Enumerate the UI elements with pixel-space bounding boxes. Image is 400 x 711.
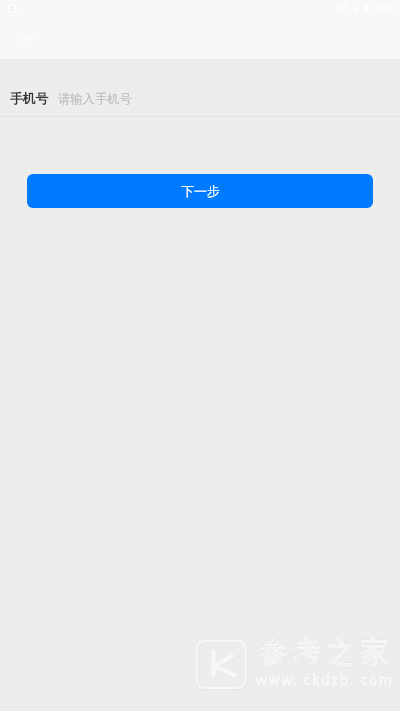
button[interactable]: 下一步 <box>27 174 373 208</box>
staticText: 手机号 <box>10 91 49 107</box>
staticText: 请输入手机号 <box>58 91 132 106</box>
staticText: www. ckdzb. com <box>256 670 394 689</box>
staticText: 参考之家 <box>257 634 391 671</box>
staticText: 参考之家 <box>257 634 391 671</box>
staticText: 下一步 <box>181 183 220 199</box>
staticText: www. ckdzb. com <box>256 670 394 689</box>
